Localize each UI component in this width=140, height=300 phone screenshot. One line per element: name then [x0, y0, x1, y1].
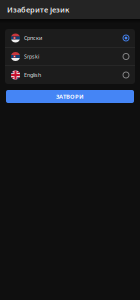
staticText: Изаберите језик — [7, 4, 69, 15]
staticText: English — [24, 71, 41, 79]
button[interactable]: Srpski — [5, 47, 135, 65]
staticText: Srpski — [24, 53, 39, 60]
staticText: Српски — [24, 34, 42, 42]
button[interactable]: ЗАТВОРИ — [6, 90, 134, 103]
staticText: ЗАТВОРИ — [56, 92, 84, 100]
button[interactable]: English — [5, 66, 135, 84]
button[interactable]: Српски — [5, 29, 135, 47]
